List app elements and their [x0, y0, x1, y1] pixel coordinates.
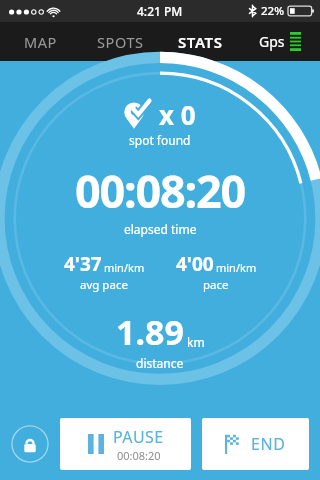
- button[interactable]: END: [202, 418, 309, 470]
- staticText: STATS: [178, 32, 223, 52]
- button[interactable]: STATS: [160, 22, 240, 61]
- staticText: elapsed time: [124, 221, 197, 237]
- staticText: x 0: [159, 97, 196, 132]
- staticText: END: [251, 433, 286, 455]
- staticText: min/km: [216, 260, 257, 275]
- button[interactable]: Gps: [240, 22, 320, 61]
- staticText: SPOTS: [97, 32, 144, 52]
- staticText: 00:08:20: [117, 448, 161, 463]
- staticText: spot found: [129, 132, 191, 148]
- button[interactable]: MAP: [0, 22, 80, 61]
- staticText: 00:08:20: [75, 160, 246, 221]
- staticText: km: [187, 334, 205, 350]
- button[interactable]: SPOTS: [80, 22, 160, 61]
- staticText: 22%: [261, 3, 284, 19]
- staticText: min/km: [104, 260, 145, 275]
- staticText: Gps: [259, 32, 285, 51]
- staticText: PAUSE: [113, 426, 164, 448]
- staticText: 4'00: [176, 251, 214, 277]
- button[interactable]: Lock screen: [11, 425, 49, 463]
- staticText: MAP: [24, 32, 57, 52]
- staticText: avg pace: [80, 277, 128, 293]
- staticText: 4:21 PM: [137, 3, 183, 19]
- staticText: 4'37: [64, 251, 102, 277]
- staticText: pace: [203, 277, 229, 293]
- button[interactable]: PAUSE: [60, 418, 191, 470]
- staticText: distance: [136, 355, 184, 371]
- staticText: 1.89: [116, 309, 184, 355]
